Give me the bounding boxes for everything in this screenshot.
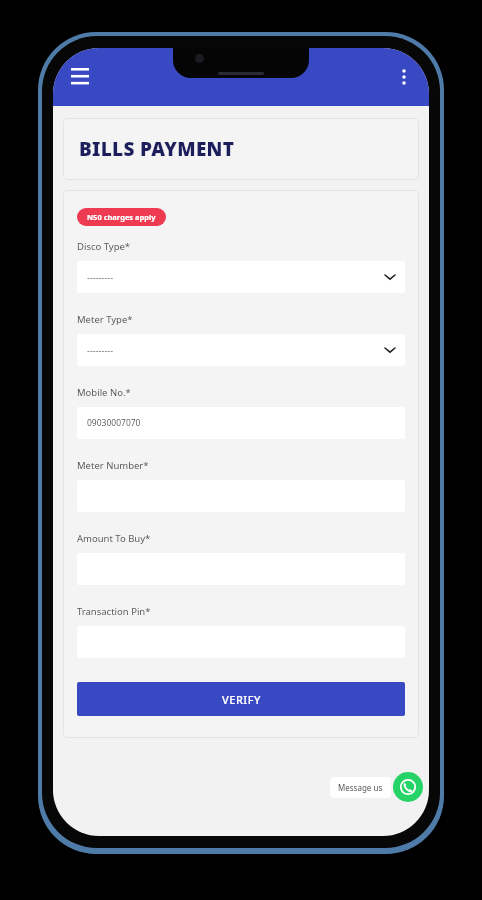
staticText: VERIFY [222,692,261,707]
button[interactable]: More options [387,60,421,94]
staticText: --------- [87,344,114,356]
staticText: N50 charges apply [87,212,156,222]
staticText: Meter Number* [77,459,149,472]
button[interactable]: N50 charges apply [77,208,166,226]
staticText: 09030007070 [87,417,141,429]
button[interactable]: Message us [330,777,391,798]
button[interactable]: 09030007070 [77,407,405,439]
staticText: Meter Type* [77,313,133,326]
button[interactable]: Open navigation menu [63,60,97,94]
staticText: Transaction Pin* [77,605,151,618]
button[interactable]: VERIFY [77,682,405,716]
staticText: Amount To Buy* [77,532,151,545]
button[interactable]: --------- [77,334,405,366]
staticText: Disco Type* [77,240,131,253]
staticText: Mobile No.* [77,386,131,399]
button[interactable]: --------- [77,261,405,293]
staticText: BILLS PAYMENT [79,136,235,162]
button[interactable]: Chat on WhatsApp [393,772,423,802]
staticText: Message us [338,782,383,793]
staticText: --------- [87,271,114,283]
